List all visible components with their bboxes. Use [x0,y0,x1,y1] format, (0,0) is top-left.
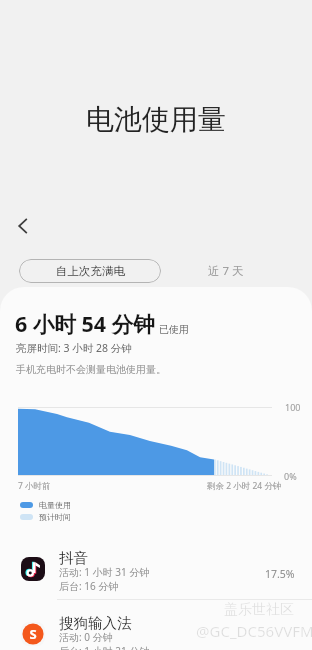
staticText: @GC_DC56VVFM [196,621,312,641]
button[interactable]: 近 7 天 [196,259,256,283]
staticText: 后台: 1 小时 21 分钟 [59,646,150,650]
staticText: 6 小时 54 分钟 [15,313,155,338]
staticText: 活动: 1 小时 31 分钟 [59,567,150,578]
staticText: 抖音 [59,552,88,567]
staticText: 亮屏时间: 3 小时 28 分钟 [16,341,132,355]
staticText: 剩余 2 小时 24 分钟 [207,480,282,492]
staticText: 手机充电时不会测量电池使用量。 [16,363,166,376]
button[interactable]: 自上次充满电 [19,259,161,283]
staticText: 电量使用 [39,500,71,510]
staticText: S [29,625,37,643]
staticText: 预计时间 [39,512,71,522]
staticText: 近 7 天 [208,263,244,279]
staticText: 已使用 [159,323,189,336]
staticText: 活动: 0 分钟 [59,632,113,643]
staticText: 17.5% [265,567,295,581]
staticText: 自上次充满电 [56,264,125,278]
staticText: 盖乐世社区 [224,601,294,619]
button[interactable]: S [0,609,312,650]
staticText: 7 小时前 [18,480,51,492]
staticText: 后台: 16 分钟 [59,581,119,592]
staticText: 搜狗输入法 [59,617,132,632]
button[interactable]: Back [9,212,37,240]
staticText: 100 [285,401,301,413]
staticText: 电池使用量 [86,105,226,137]
button[interactable]: 抖音 [0,544,312,599]
staticText: 0% [284,470,297,482]
